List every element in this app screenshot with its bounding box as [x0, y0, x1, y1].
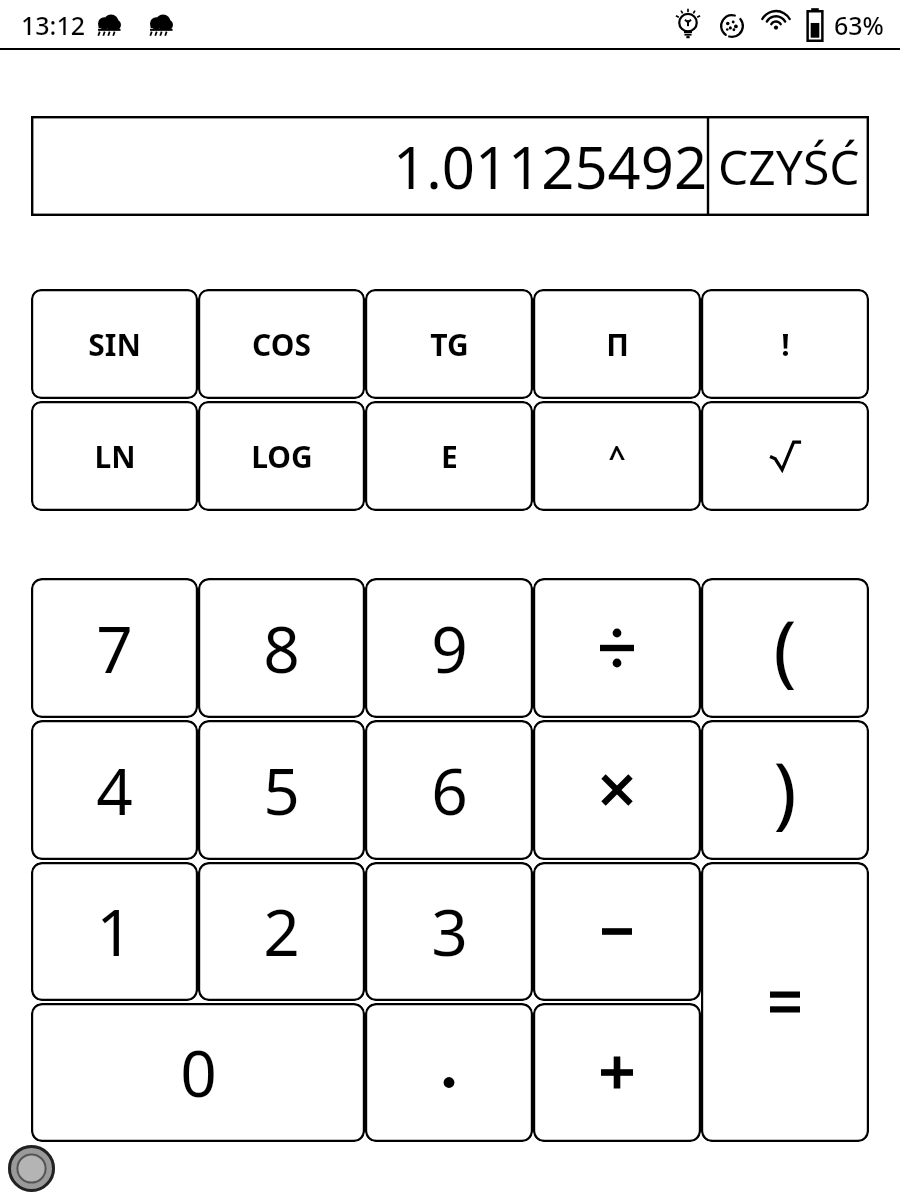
staticText: 63% [834, 8, 884, 42]
staticText: ) [773, 737, 797, 843]
staticText: ! [781, 324, 790, 365]
staticText: 0 [180, 1029, 217, 1116]
button[interactable]: 3 [365, 862, 533, 1001]
button[interactable]: Π [533, 289, 701, 399]
staticText: 8 [263, 605, 300, 692]
staticText: ( [773, 595, 797, 701]
button[interactable]: Minus [533, 862, 701, 1001]
staticText: 9 [431, 605, 468, 692]
button[interactable]: TG [365, 289, 533, 399]
staticText: CZYŚĆ [718, 134, 860, 199]
staticText: 5 [263, 747, 300, 834]
staticText: TG [430, 324, 469, 365]
button[interactable]: Divide [533, 578, 701, 718]
staticText: LN [94, 436, 136, 477]
button[interactable]: E [365, 401, 533, 511]
staticText: 4 [96, 747, 133, 834]
button[interactable]: Multiply [533, 720, 701, 860]
button[interactable]: Square root [701, 401, 869, 511]
staticText: Π [606, 324, 629, 365]
staticText: 1 [96, 888, 133, 975]
button[interactable]: 1 [31, 862, 198, 1001]
button[interactable]: Equals [701, 862, 869, 1142]
staticText: 13:12 [21, 8, 86, 42]
button[interactable]: Home [8, 1145, 55, 1192]
button[interactable]: ) [701, 720, 869, 860]
staticText: 7 [96, 605, 133, 692]
staticText: ^ [608, 436, 626, 477]
staticText: 3 [431, 888, 468, 975]
button[interactable]: Plus [533, 1003, 701, 1142]
button[interactable]: Decimal point [365, 1003, 533, 1142]
button[interactable]: SIN [31, 289, 198, 399]
button[interactable]: ! [701, 289, 869, 399]
button[interactable]: ( [701, 578, 869, 718]
button[interactable]: 7 [31, 578, 198, 718]
button[interactable]: 4 [31, 720, 198, 860]
staticText: LOG [251, 436, 313, 477]
button[interactable]: COS [198, 289, 365, 399]
button[interactable]: 0 [31, 1003, 365, 1142]
button[interactable]: ^ [533, 401, 701, 511]
button[interactable]: 6 [365, 720, 533, 860]
button[interactable]: 5 [198, 720, 365, 860]
button[interactable]: 8 [198, 578, 365, 718]
button[interactable]: LN [31, 401, 198, 511]
button[interactable]: LOG [198, 401, 365, 511]
staticText: 1.01125492 [393, 127, 708, 206]
button[interactable]: 2 [198, 862, 365, 1001]
staticText: COS [252, 324, 311, 365]
staticText: 2 [263, 888, 300, 975]
staticText: SIN [88, 324, 141, 365]
button[interactable]: 9 [365, 578, 533, 718]
button[interactable]: CZYŚĆ [708, 116, 869, 216]
staticText: 6 [431, 747, 468, 834]
staticText: E [441, 436, 458, 477]
